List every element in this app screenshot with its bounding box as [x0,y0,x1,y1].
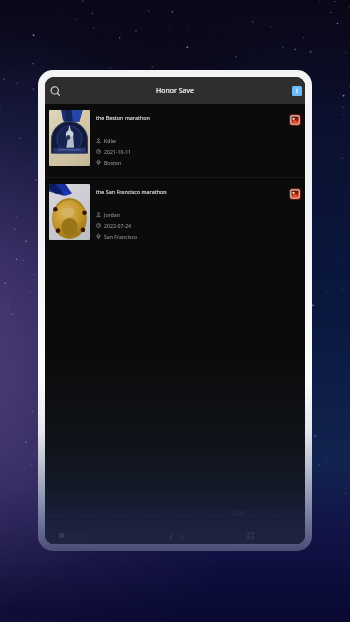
staticText: San Francisco [104,233,138,240]
button[interactable]: Add [292,86,302,96]
staticText: 2022-07-24 [104,222,132,229]
staticText: Kdlw [104,137,116,144]
staticText: 2021-10-11 [104,148,132,155]
button[interactable]: Search [46,82,64,100]
staticText: Honor Save [156,86,194,96]
button[interactable]: Music [169,533,184,539]
staticText: Jordan [104,211,120,218]
button[interactable]: Photo [289,188,301,200]
button[interactable]: the San Francisco marathon [45,178,305,251]
button[interactable]: the Beston marathon [45,104,305,177]
button[interactable]: T-Mobile LTE [59,533,90,538]
staticText: the Beston marathon [96,114,150,121]
button[interactable]: Photo [289,114,301,126]
button[interactable]: Apps [247,532,254,539]
staticText: the San Francisco marathon [96,188,167,195]
staticText: Boston [104,159,122,166]
